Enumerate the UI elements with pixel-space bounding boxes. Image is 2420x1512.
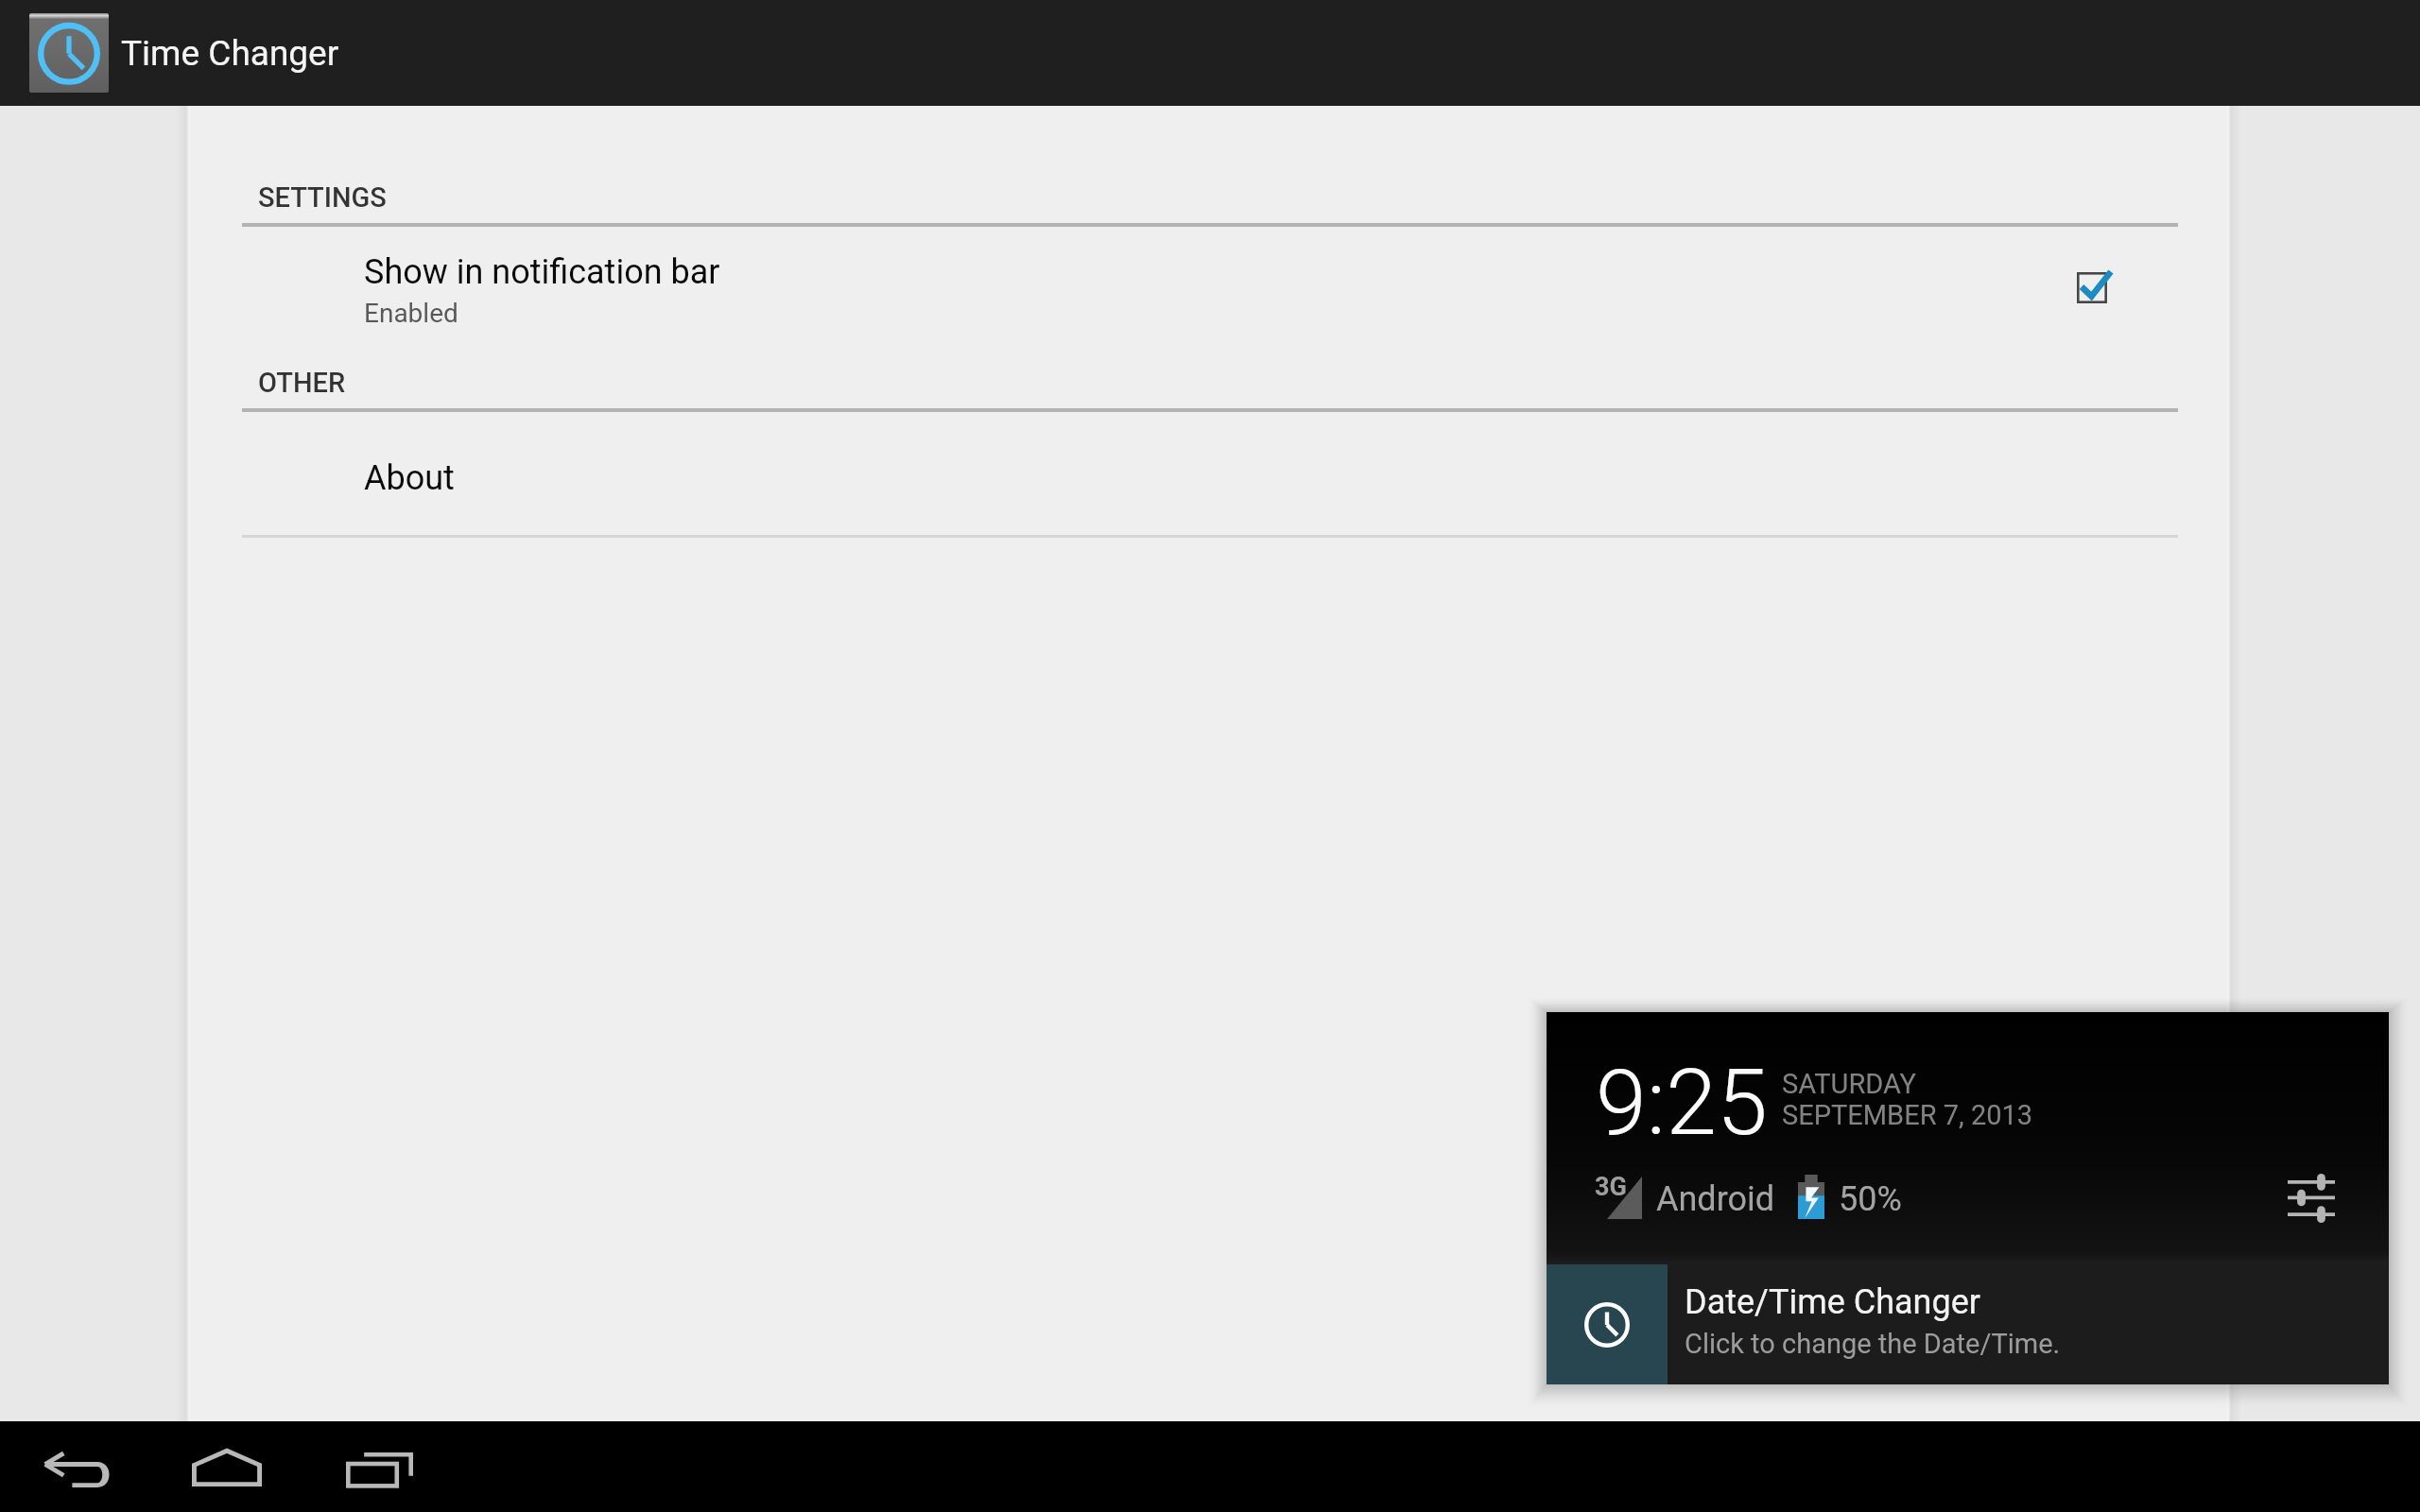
button[interactable]: Back (0, 1421, 142, 1512)
button[interactable] (190, 423, 2227, 535)
staticText: Time Changer (121, 33, 339, 74)
button[interactable] (1547, 1264, 2389, 1384)
staticText: SEPTEMBER 7, 2013 (1782, 1099, 2033, 1131)
staticText: Show in notification bar (364, 252, 720, 292)
button[interactable]: Show in notification bar checkbox (2057, 251, 2125, 319)
staticText: 9:25 (1596, 1049, 1768, 1157)
staticText: Click to change the Date/Time. (1685, 1328, 2061, 1360)
staticText: Android (1656, 1179, 1775, 1219)
button[interactable]: Quick settings (2288, 1174, 2335, 1223)
staticText: About (364, 458, 455, 498)
staticText: SETTINGS (258, 181, 387, 214)
button[interactable]: Recent apps (299, 1421, 441, 1512)
staticText: Date/Time Changer (1685, 1282, 1980, 1322)
button[interactable]: Time Changer (0, 0, 397, 106)
button[interactable] (190, 238, 2227, 348)
staticText: SATURDAY (1782, 1068, 1917, 1100)
staticText: 3G (1595, 1172, 1627, 1202)
staticText: 50% (1839, 1179, 1902, 1219)
button[interactable]: Home (149, 1421, 291, 1512)
staticText: OTHER (258, 367, 346, 399)
staticText: Enabled (364, 298, 458, 329)
